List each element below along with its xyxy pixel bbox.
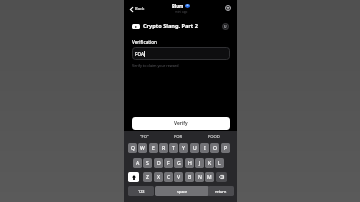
button[interactable]: A [133,158,142,168]
staticText: U [224,24,227,29]
staticText: FOR [174,134,183,140]
staticText: FOA [135,51,144,57]
staticText: W [140,145,145,152]
button[interactable]: J [195,158,204,168]
button[interactable]: F [164,158,173,168]
button[interactable]: Back [130,6,145,12]
staticText: F [167,160,170,167]
staticText: A [136,160,140,167]
staticText: T [172,145,175,152]
staticText: space [177,189,188,194]
button[interactable]: Crypto Slang. Part 2 [132,22,229,30]
button[interactable]: P [221,143,230,153]
button[interactable]: 123 [128,186,154,196]
staticText: H [188,160,192,167]
staticText: P [224,145,228,152]
button[interactable]: X [154,172,163,182]
staticText: “FO” [140,134,149,140]
button[interactable]: FOA [132,47,230,60]
button[interactable]: Z [143,172,152,182]
staticText: return [215,189,227,194]
button[interactable]: B [185,172,194,182]
button[interactable]: Backspace [216,172,227,182]
button[interactable]: “FO” [127,133,161,141]
button[interactable]: U [190,143,199,153]
staticText: U [193,145,197,152]
button[interactable]: S [143,158,152,168]
staticText: I [204,145,206,152]
button[interactable]: O [210,143,219,153]
staticText: Verify [174,120,188,127]
button[interactable]: Verify [132,117,230,130]
staticText: Z [146,174,149,181]
button[interactable]: L [215,158,224,168]
staticText: 123 [138,189,145,194]
staticText: Crypto Slang. Part 2 [143,22,198,30]
button[interactable]: G [174,158,183,168]
button[interactable]: FOR [161,133,196,141]
staticText: M [207,174,212,181]
button[interactable]: H [185,158,194,168]
button[interactable]: Minimize [225,5,231,11]
button[interactable]: Reward [222,23,229,30]
staticText: S [146,160,149,167]
button[interactable]: E [149,143,158,153]
staticText: K [208,160,212,167]
button[interactable]: T [169,143,178,153]
staticText: O [213,145,217,152]
staticText: D [157,160,161,167]
button[interactable]: N [195,172,204,182]
staticText: Verify to claim your reward [132,63,179,68]
staticText: Y [182,145,185,152]
button[interactable]: FOOD [196,133,231,141]
staticText: Q [131,145,135,152]
staticText: mini app [175,10,188,14]
button[interactable]: K [205,158,214,168]
staticText: V [177,174,181,181]
button[interactable]: Q [128,143,137,153]
button[interactable]: return [208,186,234,196]
staticText: J [199,160,201,167]
staticText: E [152,145,155,152]
button[interactable]: Shift [128,172,139,182]
button[interactable]: V [174,172,183,182]
button[interactable]: M [205,172,214,182]
button[interactable]: I [200,143,209,153]
button[interactable]: C [164,172,173,182]
staticText: L [218,160,221,167]
staticText: X [157,174,160,181]
button[interactable]: D [154,158,163,168]
staticText: G [177,160,181,167]
button[interactable]: W [138,143,147,153]
button[interactable]: space [155,186,209,196]
staticText: R [162,145,166,152]
button[interactable]: R [159,143,168,153]
staticText: FOOD [208,134,220,140]
staticText: Verification [132,39,157,45]
button[interactable]: Y [179,143,188,153]
staticText: Blum [172,3,184,9]
staticText: C [167,174,171,181]
staticText: B [188,174,192,181]
staticText: Back [135,6,145,12]
staticText: N [198,174,202,181]
